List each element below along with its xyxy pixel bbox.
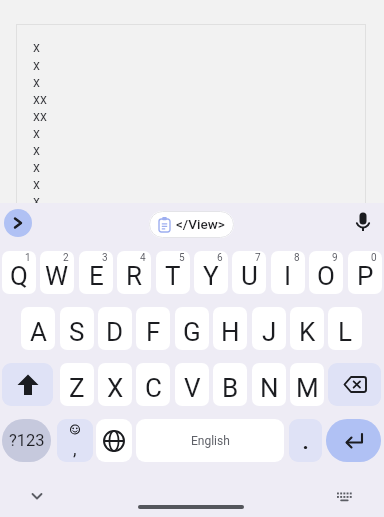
staticText: , bbox=[73, 438, 77, 459]
staticText: Q bbox=[10, 261, 28, 291]
staticText: 1 bbox=[25, 252, 31, 264]
staticText: U bbox=[241, 261, 258, 291]
button[interactable] bbox=[2, 363, 53, 406]
staticText: W bbox=[45, 261, 69, 291]
staticText: R bbox=[126, 261, 143, 291]
button[interactable]: ?123 bbox=[2, 419, 51, 462]
staticText: J bbox=[262, 317, 277, 347]
button[interactable]: H bbox=[213, 307, 247, 350]
button[interactable]: K bbox=[290, 307, 324, 350]
staticText: ?123 bbox=[9, 431, 45, 450]
staticText: 0 bbox=[371, 252, 377, 264]
staticText: B bbox=[222, 373, 239, 403]
staticText: H bbox=[221, 317, 240, 347]
button[interactable]: X bbox=[98, 363, 132, 406]
button[interactable]: V bbox=[175, 363, 209, 406]
button[interactable]: C bbox=[136, 363, 170, 406]
staticText: 9 bbox=[332, 252, 338, 264]
staticText: 2 bbox=[63, 252, 69, 264]
button[interactable]: D bbox=[98, 307, 132, 350]
button[interactable]: B bbox=[213, 363, 247, 406]
button[interactable]: O bbox=[309, 251, 343, 294]
button[interactable]: U bbox=[232, 251, 266, 294]
button[interactable] bbox=[289, 419, 322, 462]
button[interactable]: J bbox=[252, 307, 286, 350]
button[interactable] bbox=[138, 505, 244, 509]
button[interactable] bbox=[328, 363, 381, 406]
button[interactable] bbox=[326, 419, 381, 462]
staticText: V bbox=[184, 373, 201, 403]
staticText: 7 bbox=[255, 252, 261, 264]
button[interactable]: </View> bbox=[149, 211, 234, 238]
button[interactable] bbox=[28, 488, 46, 504]
button[interactable] bbox=[336, 489, 353, 503]
staticText: </View> bbox=[176, 216, 225, 232]
staticText: 3 bbox=[102, 252, 108, 264]
button[interactable]: A bbox=[21, 307, 55, 350]
staticText: 4 bbox=[140, 252, 146, 264]
staticText: N bbox=[260, 373, 279, 403]
staticText: Y bbox=[203, 261, 219, 291]
button[interactable] bbox=[4, 209, 32, 237]
staticText: I bbox=[284, 261, 292, 291]
staticText: D bbox=[106, 317, 124, 347]
button[interactable] bbox=[96, 419, 132, 462]
staticText: X bbox=[107, 373, 124, 403]
button[interactable]: I bbox=[271, 251, 305, 294]
staticText: P bbox=[357, 261, 374, 291]
button[interactable]: English bbox=[136, 419, 284, 462]
button[interactable]: P bbox=[348, 251, 382, 294]
button[interactable]: Y bbox=[194, 251, 228, 294]
staticText: S bbox=[69, 317, 85, 347]
button[interactable]: S bbox=[60, 307, 94, 350]
button[interactable] bbox=[352, 211, 374, 235]
button[interactable]: L bbox=[328, 307, 362, 350]
button[interactable]: T bbox=[156, 251, 190, 294]
staticText: 8 bbox=[294, 252, 300, 264]
staticText: G bbox=[183, 317, 201, 347]
staticText: English bbox=[191, 434, 230, 448]
button[interactable]: , bbox=[57, 419, 93, 462]
staticText: x x x xx xx x x x x x x bbox=[33, 39, 47, 224]
staticText: F bbox=[146, 317, 161, 347]
button[interactable]: N bbox=[252, 363, 286, 406]
button[interactable]: M bbox=[290, 363, 324, 406]
staticText: A bbox=[30, 317, 47, 347]
button[interactable]: F bbox=[136, 307, 170, 350]
staticText: T bbox=[165, 261, 181, 291]
staticText: Z bbox=[69, 373, 85, 403]
staticText: L bbox=[338, 317, 353, 347]
staticText: K bbox=[299, 317, 316, 347]
staticText: E bbox=[89, 261, 104, 291]
button[interactable]: R bbox=[117, 251, 151, 294]
staticText: C bbox=[145, 373, 162, 403]
button[interactable]: Z bbox=[60, 363, 94, 406]
button[interactable]: G bbox=[175, 307, 209, 350]
staticText: 6 bbox=[217, 252, 223, 264]
button[interactable]: Q bbox=[2, 251, 36, 294]
staticText: O bbox=[317, 261, 335, 291]
button[interactable]: W bbox=[40, 251, 74, 294]
staticText: 5 bbox=[179, 252, 185, 264]
button[interactable]: E bbox=[79, 251, 113, 294]
staticText: M bbox=[296, 373, 319, 403]
